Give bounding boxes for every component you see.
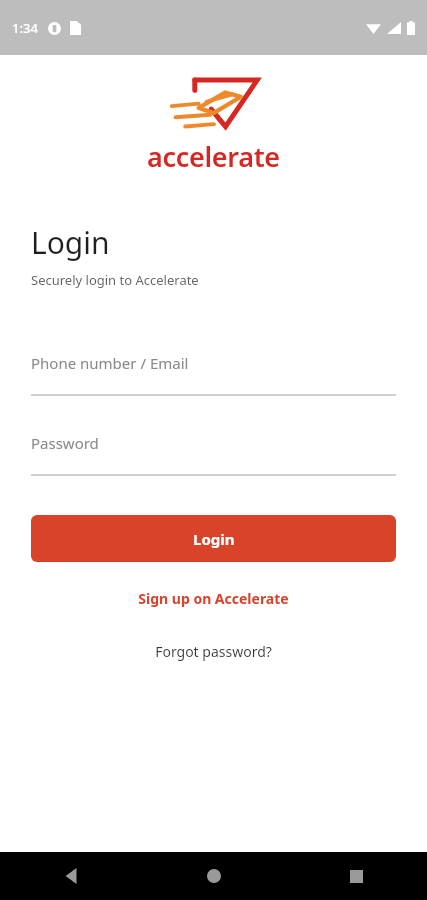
button[interactable]: Home	[143, 852, 285, 900]
staticText: Password	[31, 433, 99, 453]
staticText: 1:34	[12, 19, 38, 37]
button[interactable]: Recent apps	[285, 852, 427, 900]
button[interactable]: Password	[31, 428, 396, 476]
button[interactable]: Back	[0, 852, 143, 900]
staticText: Phone number / Email	[31, 353, 189, 373]
staticText: Login	[31, 222, 110, 263]
staticText: Securely login to Accelerate	[31, 271, 199, 289]
button[interactable]: Login	[31, 515, 396, 562]
staticText: Login	[193, 529, 235, 549]
staticText: Forgot password?	[155, 642, 272, 661]
button[interactable]: Phone number / Email	[31, 348, 396, 396]
button[interactable]: Forgot password?	[31, 636, 396, 666]
button[interactable]: Sign up on Accelerate	[31, 582, 396, 614]
staticText: accelerate	[147, 138, 280, 175]
staticText: Sign up on Accelerate	[138, 589, 289, 608]
